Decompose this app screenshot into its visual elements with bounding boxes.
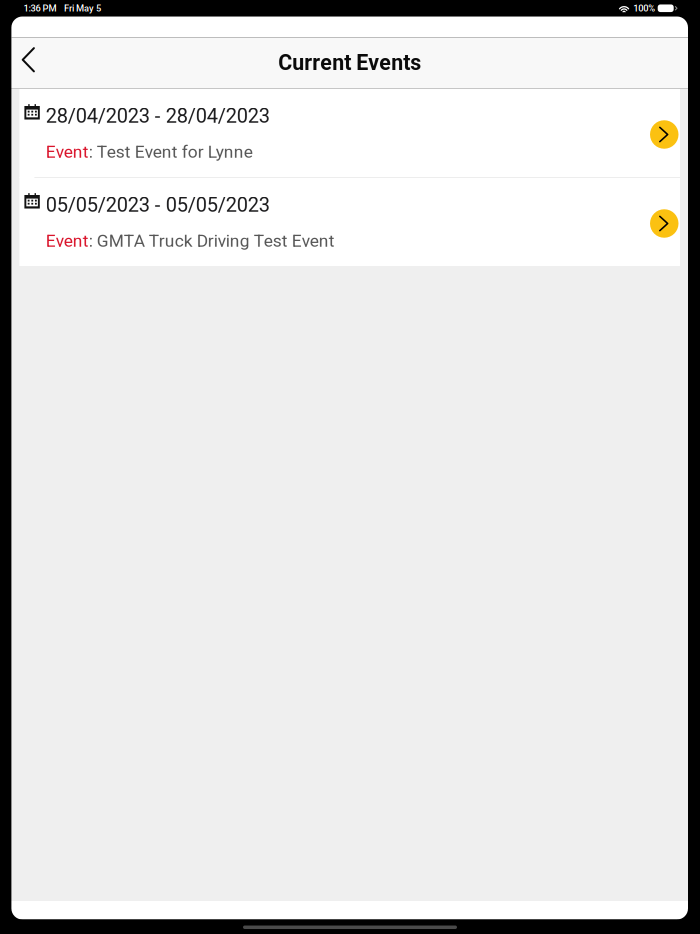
staticText: : GMTA Truck Driving Test Event [89, 231, 335, 251]
staticText: Current Events [278, 50, 421, 75]
button[interactable]: 05/05/2023 - 05/05/2023 [19, 178, 680, 266]
staticText: Fri May 5 [64, 3, 101, 14]
button[interactable]: 28/04/2023 - 28/04/2023 [19, 89, 680, 177]
staticText: Event [46, 231, 89, 251]
button[interactable]: Back [11, 38, 49, 87]
staticText: 05/05/2023 - 05/05/2023 [46, 193, 270, 216]
staticText: 1:36 PM [24, 3, 57, 14]
staticText: Event [46, 142, 89, 162]
staticText: 100% [633, 3, 655, 14]
staticText: : Test Event for Lynne [89, 142, 253, 162]
staticText: 28/04/2023 - 28/04/2023 [46, 104, 270, 127]
